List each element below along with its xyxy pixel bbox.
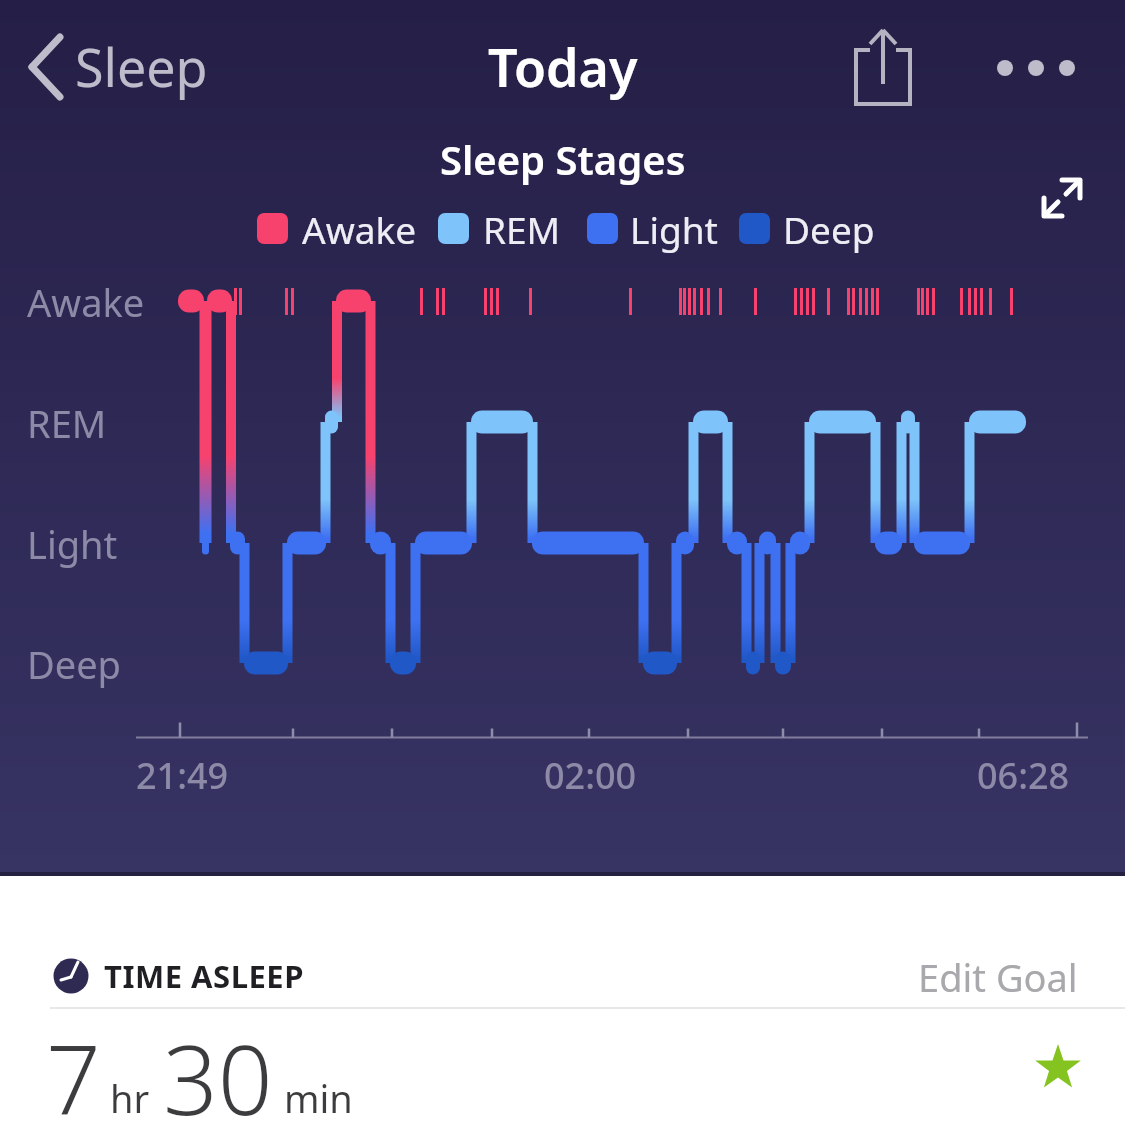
staticText: 02:00 xyxy=(544,751,637,800)
staticText: min xyxy=(284,1072,353,1124)
staticText: 21:49 xyxy=(136,751,229,800)
staticText: Deep xyxy=(27,638,121,690)
button[interactable] xyxy=(845,20,925,115)
staticText: Light xyxy=(630,204,718,254)
staticText: Awake xyxy=(27,276,145,328)
staticText: Today xyxy=(488,31,638,102)
staticText: 06:28 xyxy=(977,751,1070,800)
staticText: 30 xyxy=(163,1012,273,1135)
staticText: REM xyxy=(483,204,561,254)
staticText: 7 xyxy=(46,1012,101,1135)
staticText: REM xyxy=(27,397,107,449)
staticText: Light xyxy=(27,518,118,570)
staticText: TIME ASLEEP xyxy=(104,955,304,997)
staticText: Edit Goal xyxy=(918,951,1078,1003)
button[interactable]: Edit Goal xyxy=(918,951,1078,1003)
staticText: Deep xyxy=(783,204,875,254)
staticText: hr xyxy=(110,1072,150,1124)
staticText: Sleep xyxy=(75,31,208,102)
button[interactable] xyxy=(985,35,1085,100)
button[interactable] xyxy=(1030,165,1095,230)
button[interactable] xyxy=(20,30,220,105)
staticText: Awake xyxy=(302,204,417,254)
staticText: Sleep Stages xyxy=(440,132,686,186)
